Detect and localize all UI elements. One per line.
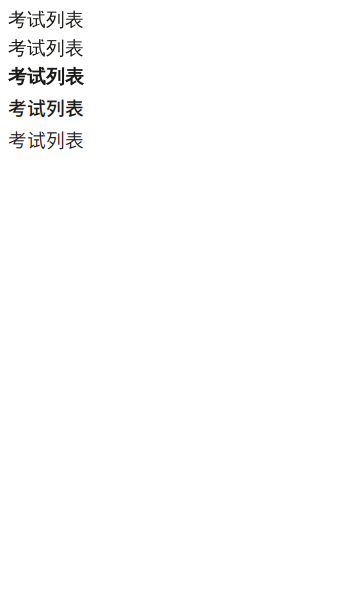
staticText: 考试列表 [8, 8, 84, 31]
staticText: 考试列表 [8, 93, 84, 120]
staticText: 考试列表 [8, 65, 84, 88]
staticText: 考试列表 [8, 36, 84, 60]
staticText: 考试列表 [8, 126, 84, 153]
